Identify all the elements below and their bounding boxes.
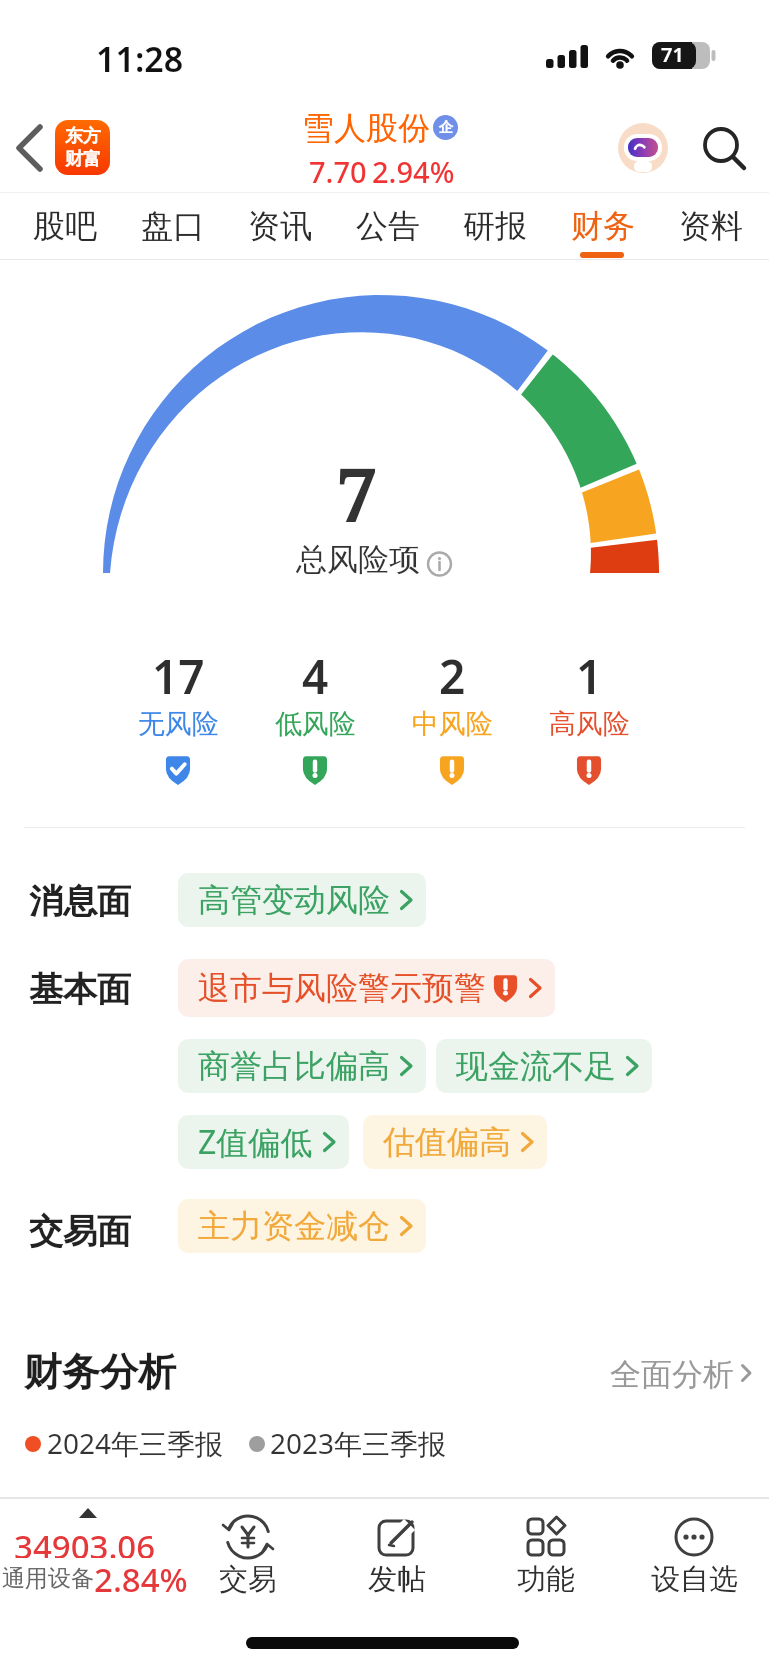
staticText: 消息面: [29, 880, 131, 920]
staticText: 1: [576, 645, 603, 695]
button[interactable]: 财务: [560, 200, 646, 252]
staticText: 资料: [679, 206, 743, 246]
staticText: 2024年三季报: [47, 1424, 224, 1462]
button[interactable]: 股吧: [22, 200, 108, 252]
staticText: Z值偏低: [198, 1120, 313, 1164]
staticText: 34903.06: [14, 1524, 156, 1558]
button[interactable]: 退市与风险警示预警: [178, 959, 555, 1017]
button[interactable]: 高管变动风险: [178, 873, 426, 927]
button[interactable]: 34903.06: [0, 1500, 170, 1600]
staticText: 总风险项: [296, 540, 420, 576]
staticText: 11:28: [96, 36, 184, 76]
button[interactable]: 现金流不足: [436, 1039, 652, 1093]
button[interactable]: Z值偏低: [178, 1115, 349, 1169]
button[interactable]: 资料: [668, 200, 754, 252]
staticText: 4: [302, 645, 329, 695]
button[interactable]: 商誉占比偏高: [178, 1039, 426, 1093]
staticText: 2.84%: [94, 1557, 188, 1602]
button[interactable]: [491, 1500, 601, 1600]
button[interactable]: [639, 1500, 749, 1600]
staticText: 全面分析: [610, 1355, 734, 1391]
staticText: 盘口: [141, 206, 205, 246]
staticText: 股吧: [33, 206, 97, 246]
staticText: 设自选: [651, 1561, 738, 1598]
staticText: 无风险: [138, 707, 219, 741]
button[interactable]: [10, 120, 54, 176]
staticText: 退市与风险警示预警: [198, 968, 486, 1008]
button[interactable]: [618, 123, 668, 173]
staticText: 2: [439, 645, 466, 695]
staticText: 交易: [219, 1561, 277, 1598]
staticText: 2.94%: [372, 152, 455, 186]
staticText: 雪人股份: [302, 108, 430, 148]
button[interactable]: 全面分析: [610, 1355, 753, 1391]
staticText: 高管变动风险: [198, 880, 390, 920]
button[interactable]: [193, 1500, 303, 1600]
staticText: 2023年三季报: [270, 1424, 447, 1462]
button[interactable]: 主力资金减仓: [178, 1199, 426, 1253]
button[interactable]: 估值偏高: [363, 1115, 547, 1169]
staticText: 公告: [356, 206, 420, 246]
staticText: 中风险: [412, 707, 493, 741]
staticText: 17: [152, 645, 205, 695]
staticText: 71: [661, 41, 684, 68]
staticText: 低风险: [275, 707, 356, 741]
button[interactable]: 研报: [452, 200, 538, 252]
staticText: 企: [439, 119, 453, 137]
staticText: 基本面: [29, 968, 131, 1008]
button[interactable]: 盘口: [130, 200, 216, 252]
button[interactable]: 东方: [55, 120, 110, 175]
staticText: 财务分析: [24, 1348, 176, 1396]
staticText: 资讯: [248, 206, 312, 246]
staticText: 商誉占比偏高: [198, 1046, 390, 1086]
staticText: 发帖: [368, 1561, 426, 1598]
staticText: 东方: [65, 125, 101, 148]
staticText: 7.70: [309, 152, 367, 186]
button[interactable]: 公告: [345, 200, 431, 252]
button[interactable]: [700, 124, 750, 174]
button[interactable]: 资讯: [237, 200, 323, 252]
staticText: 主力资金减仓: [198, 1206, 390, 1246]
staticText: 交易面: [29, 1210, 131, 1250]
staticText: 财富: [65, 148, 101, 171]
staticText: 现金流不足: [456, 1046, 616, 1086]
staticText: 通用设备: [2, 1564, 94, 1593]
staticText: 7: [336, 442, 379, 530]
staticText: 研报: [463, 206, 527, 246]
staticText: 估值偏高: [383, 1122, 511, 1162]
staticText: 功能: [517, 1561, 575, 1598]
button[interactable]: [342, 1500, 452, 1600]
staticText: 高风险: [549, 707, 630, 741]
staticText: 财务: [571, 206, 635, 246]
